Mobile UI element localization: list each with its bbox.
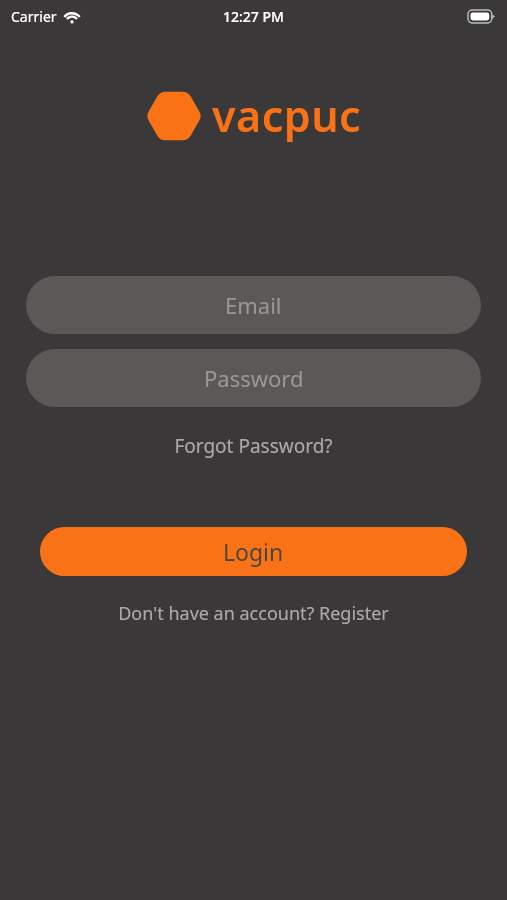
staticText: Email	[225, 290, 282, 320]
button[interactable]: Email	[26, 276, 481, 334]
button[interactable]: Login	[40, 527, 467, 576]
staticText: Password	[204, 363, 304, 393]
button[interactable]: Don't have an account? Register	[110, 597, 397, 630]
button[interactable]: Password	[26, 349, 481, 407]
staticText: Don't have an account? Register	[118, 601, 389, 626]
staticText: Forgot Password?	[174, 433, 333, 459]
staticText: 12:27 PM	[223, 7, 284, 26]
staticText: Carrier	[11, 7, 57, 26]
staticText: Login	[223, 536, 284, 567]
button[interactable]: Forgot Password?	[166, 429, 341, 463]
staticText: vacpuc	[212, 86, 362, 145]
